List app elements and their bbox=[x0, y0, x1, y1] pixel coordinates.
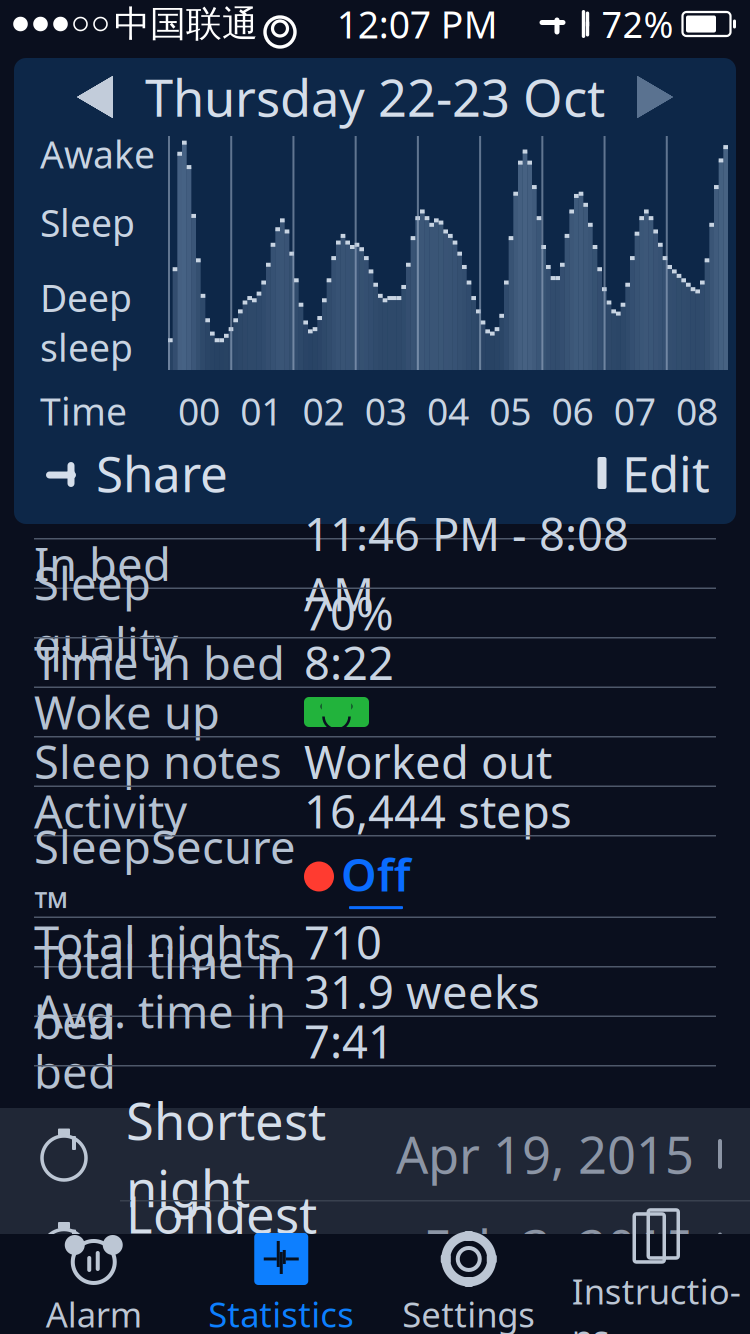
button[interactable]: Shortest night bbox=[0, 1108, 750, 1200]
staticText: 03 bbox=[365, 386, 407, 436]
staticText: Deep bbox=[40, 273, 132, 322]
button[interactable]: Settings bbox=[375, 1234, 562, 1334]
staticText: Settings bbox=[402, 1291, 535, 1334]
staticText: Activity bbox=[34, 781, 187, 841]
staticText: 8:22 bbox=[304, 632, 394, 693]
staticText: Sleep bbox=[40, 198, 135, 247]
staticText: Sleep notes bbox=[34, 731, 282, 792]
staticText: Shortest night bbox=[126, 1087, 326, 1221]
staticText: Avg. time in bed bbox=[34, 981, 286, 1101]
staticText: Total time in bed bbox=[34, 931, 296, 1052]
button[interactable]: Share bbox=[40, 430, 228, 516]
staticText: 70% bbox=[304, 583, 394, 643]
staticText: Time in bed bbox=[34, 632, 285, 693]
staticText: 710 bbox=[304, 912, 382, 972]
staticText: sleep bbox=[40, 322, 133, 372]
button[interactable]: Edit bbox=[590, 430, 710, 516]
staticText: Total nights bbox=[34, 912, 282, 972]
button[interactable]: Alarm bbox=[0, 1234, 187, 1334]
staticText: 中国联通 bbox=[114, 2, 258, 46]
staticText: Off bbox=[341, 844, 411, 904]
staticText: Statistics bbox=[208, 1291, 354, 1334]
staticText: 7:41 bbox=[304, 1011, 394, 1071]
staticText: 01 bbox=[240, 386, 282, 436]
button[interactable]: Next night bbox=[631, 76, 679, 118]
staticText: Edit bbox=[622, 440, 710, 506]
staticText: 04 bbox=[427, 386, 469, 436]
staticText: 31.9 weeks bbox=[304, 961, 540, 1022]
staticText: 00 bbox=[178, 386, 220, 436]
staticText: 05 bbox=[489, 386, 531, 436]
staticText: Awake bbox=[40, 129, 155, 179]
staticText: Worked out bbox=[304, 731, 552, 792]
button[interactable]: Previous night bbox=[71, 76, 119, 118]
staticText: Sleep quality bbox=[34, 553, 178, 673]
staticText: 16,444 steps bbox=[304, 781, 572, 841]
button[interactable]: Instructions bbox=[562, 1234, 750, 1334]
staticText: Alarm bbox=[46, 1291, 142, 1334]
staticText: Thursday 22-23 Oct bbox=[145, 63, 605, 131]
staticText: 07 bbox=[614, 386, 656, 436]
staticText: Share bbox=[96, 440, 228, 506]
staticText: 72% bbox=[601, 0, 673, 48]
staticText: Longest night bbox=[126, 1180, 317, 1315]
button[interactable]: SleepSecure™ bbox=[0, 836, 750, 916]
button[interactable]: Longest night bbox=[0, 1201, 750, 1293]
staticText: Woke up bbox=[34, 682, 220, 742]
staticText: Time bbox=[40, 386, 127, 436]
staticText: SleepSecure™ bbox=[34, 816, 296, 937]
staticText: Apr 19, 2015 bbox=[396, 1120, 694, 1188]
staticText: 06 bbox=[551, 386, 593, 436]
staticText: 11:46 PM - 8:08 AM bbox=[304, 503, 629, 624]
button[interactable]: Statistics bbox=[187, 1234, 375, 1334]
staticText: 02 bbox=[303, 386, 345, 436]
staticText: Instructions bbox=[572, 1268, 741, 1334]
staticText: Feb 3, 2015 bbox=[423, 1214, 694, 1281]
staticText: 12:07 PM bbox=[337, 0, 498, 49]
staticText: In bed bbox=[34, 533, 171, 594]
staticText: 08 bbox=[676, 386, 718, 436]
